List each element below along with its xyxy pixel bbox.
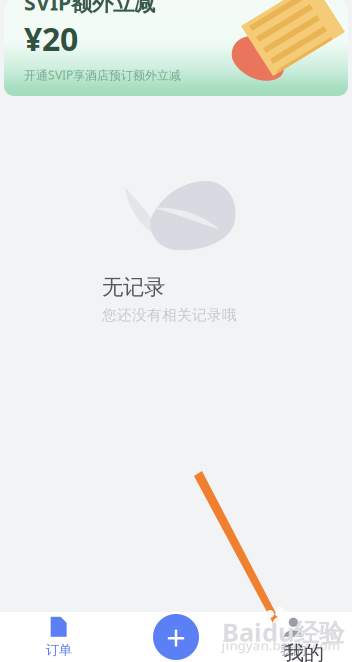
button[interactable]: 我的 [235, 612, 352, 662]
staticText: ¥20 [24, 17, 78, 60]
staticText: jingyan.baidu.com [221, 636, 340, 654]
staticText: 开通SVIP享酒店预订额外立减 [24, 67, 181, 83]
staticText: 您还没有相关记录哦 [102, 306, 237, 324]
button[interactable]: Add [117, 612, 235, 662]
staticText: 订单 [46, 642, 72, 658]
staticText: 我的 [280, 642, 306, 658]
staticText: 无记录 [102, 274, 165, 300]
staticText: + [166, 614, 186, 660]
button[interactable]: 订单 [0, 612, 117, 662]
staticText: Baidu经验 [222, 615, 344, 649]
staticText: SVIP额外立减 [24, 0, 155, 16]
staticText: 我的 [284, 641, 324, 662]
